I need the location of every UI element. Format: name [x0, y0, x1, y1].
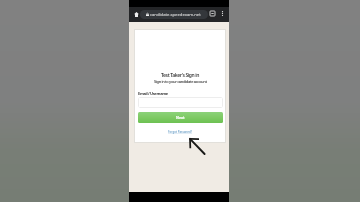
- button[interactable]: [138, 97, 223, 108]
- button[interactable]: candidate.speedexam.net: [140, 10, 208, 19]
- button[interactable]: Home: [131, 9, 141, 19]
- button[interactable]: Forgot Password?: [168, 130, 193, 134]
- staticText: Sign in to your candidate account: [154, 79, 207, 84]
- button[interactable]: Tabs: [208, 9, 217, 18]
- button[interactable]: More options: [218, 9, 227, 18]
- staticText: Test Taker's Sign in: [161, 72, 200, 79]
- button[interactable]: Next: [138, 112, 223, 123]
- staticText: Next: [176, 115, 185, 120]
- staticText: candidate.speedexam.net: [150, 12, 201, 18]
- staticText: Forgot Password?: [168, 130, 193, 134]
- staticText: Email / Username: [138, 91, 223, 97]
